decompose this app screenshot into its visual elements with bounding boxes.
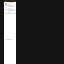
button[interactable] xyxy=(4,6,16,9)
button[interactable] xyxy=(4,10,16,13)
button[interactable] xyxy=(4,2,16,5)
button[interactable] xyxy=(4,14,16,64)
button[interactable]: Menu xyxy=(4,0,16,2)
